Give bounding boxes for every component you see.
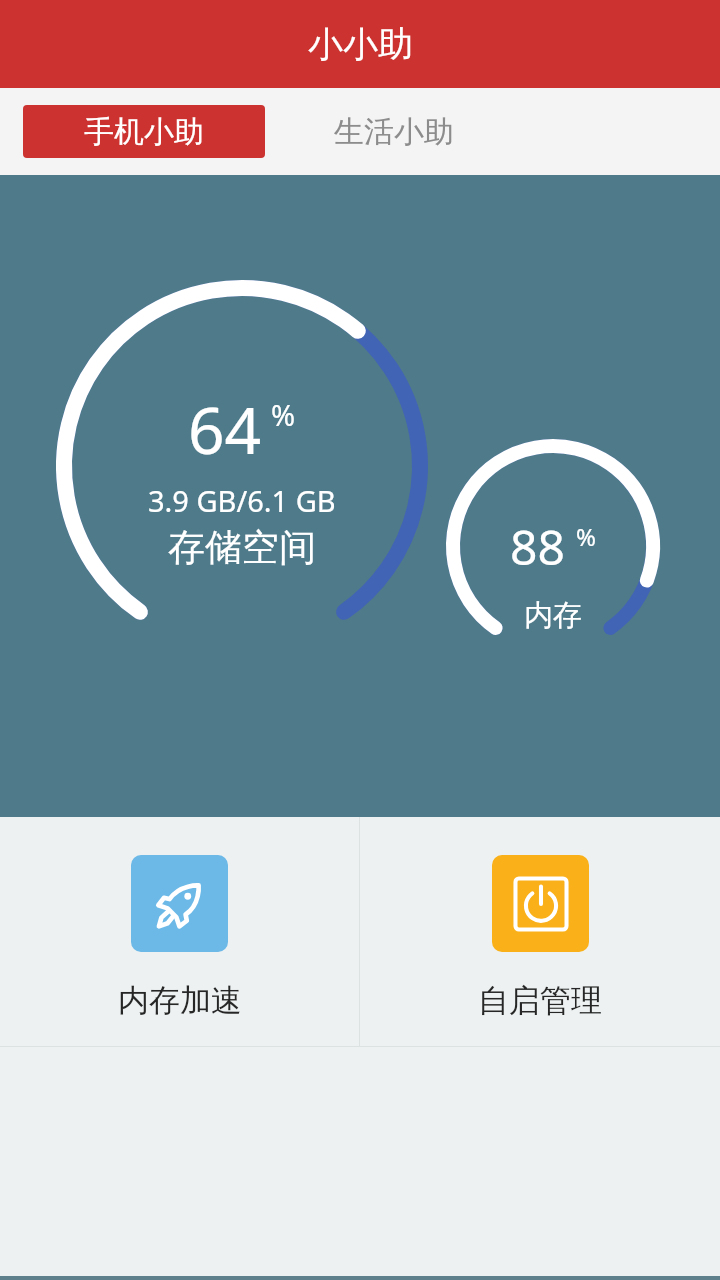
staticText: % <box>271 395 296 434</box>
staticText: 内存加速 <box>118 981 242 1020</box>
staticText: 3.9 GB/6.1 GB <box>148 481 336 520</box>
staticText: 内存 <box>524 597 582 634</box>
staticText: 小小助 <box>308 22 413 66</box>
staticText: 88 <box>510 514 565 579</box>
button[interactable]: 内存加速 <box>0 817 359 1046</box>
button[interactable]: 自启管理 <box>360 817 720 1046</box>
staticText: 自启管理 <box>478 981 602 1020</box>
button[interactable]: 手机小助 <box>23 105 265 158</box>
staticText: 64 <box>188 386 262 473</box>
staticText: 手机小助 <box>84 113 204 151</box>
staticText: % <box>576 520 596 553</box>
staticText: 存储空间 <box>168 524 316 571</box>
button[interactable]: 生活小助 <box>265 105 523 158</box>
staticText: 生活小助 <box>334 113 454 151</box>
